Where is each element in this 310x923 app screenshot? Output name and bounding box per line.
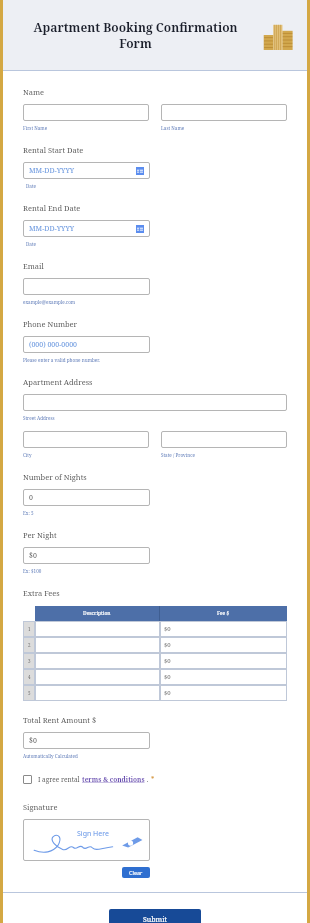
button[interactable]	[23, 394, 287, 411]
button[interactable]: 0	[23, 489, 150, 506]
staticText: Email	[23, 261, 44, 271]
button[interactable]: $0	[160, 685, 287, 701]
staticText: Ex: 5	[23, 510, 34, 516]
staticText: Apartment Booking Confirmation Form	[33, 19, 238, 52]
staticText: First Name	[23, 125, 48, 131]
button[interactable]: I agree rental	[23, 775, 155, 784]
button[interactable]: $0	[160, 669, 287, 685]
staticText: $0	[29, 551, 37, 561]
staticText: Ex: $100	[23, 568, 42, 574]
staticText: 2	[28, 642, 31, 648]
staticText: 0	[29, 493, 33, 503]
button[interactable]: $0	[23, 547, 150, 564]
button[interactable]	[35, 653, 160, 669]
staticText: Fee $	[217, 610, 230, 617]
button[interactable]: MM-DD-YYYY	[23, 220, 150, 237]
staticText: Date	[26, 183, 37, 189]
staticText: $0	[164, 641, 171, 649]
staticText: Extra Fees	[23, 588, 60, 598]
staticText: Total Rent Amount $	[23, 715, 97, 725]
staticText: MM-DD-YYYY	[29, 166, 75, 176]
staticText: City	[23, 452, 32, 458]
staticText: 3	[28, 658, 31, 664]
staticText: Phone Number	[23, 319, 78, 329]
button[interactable]: Clear	[122, 867, 150, 878]
staticText: $0	[164, 689, 171, 697]
staticText: $0	[164, 657, 171, 665]
button[interactable]	[35, 669, 160, 685]
staticText: Clear	[129, 869, 143, 876]
staticText: Rental Start Date	[23, 145, 84, 155]
staticText: Number of Nights	[23, 472, 87, 482]
staticText: Per Night	[23, 530, 57, 540]
button[interactable]: Signature pad	[23, 819, 150, 861]
staticText: .	[145, 775, 151, 784]
staticText: (000) 000-0000	[29, 340, 77, 350]
button[interactable]	[161, 431, 287, 448]
staticText: 5	[28, 690, 31, 696]
staticText: I agree rental	[38, 775, 82, 784]
staticText: terms & conditions	[82, 775, 145, 784]
staticText: Apartment Address	[23, 377, 93, 387]
button[interactable]: $0	[160, 621, 287, 637]
button[interactable]: $0	[160, 637, 287, 653]
staticText: example@example.com	[23, 299, 76, 305]
staticText: Sign Here	[77, 829, 109, 839]
staticText: Signature	[23, 802, 58, 812]
button[interactable]	[35, 637, 160, 653]
staticText: Automatically Calculated	[23, 753, 78, 759]
staticText: Please enter a valid phone number.	[23, 357, 100, 363]
button[interactable]: Pick date	[136, 167, 144, 175]
button[interactable]: $0	[23, 732, 150, 749]
staticText: Description	[83, 610, 111, 617]
staticText: State / Province	[161, 452, 195, 458]
staticText: $0	[164, 673, 171, 681]
button[interactable]: (000) 000-0000	[23, 336, 150, 353]
button[interactable]: Submit	[109, 909, 201, 923]
staticText: $0	[29, 736, 37, 746]
button[interactable]	[23, 104, 149, 121]
staticText: 4	[28, 674, 31, 680]
staticText: Last Name	[161, 125, 185, 131]
button[interactable]: Pick date	[136, 225, 144, 233]
staticText: MM-DD-YYYY	[29, 224, 75, 234]
button[interactable]	[23, 278, 150, 295]
button[interactable]: MM-DD-YYYY	[23, 162, 150, 179]
staticText: Date	[26, 241, 37, 247]
button[interactable]	[23, 431, 149, 448]
staticText: Name	[23, 87, 45, 97]
staticText: 1	[28, 626, 31, 632]
staticText: Submit	[143, 915, 167, 923]
button[interactable]	[161, 104, 287, 121]
staticText: $0	[164, 625, 171, 633]
button[interactable]: $0	[160, 653, 287, 669]
staticText: Rental End Date	[23, 203, 81, 213]
staticText: *	[151, 775, 155, 784]
staticText: Street Address	[23, 415, 55, 421]
button[interactable]	[35, 685, 160, 701]
button[interactable]	[35, 621, 160, 637]
